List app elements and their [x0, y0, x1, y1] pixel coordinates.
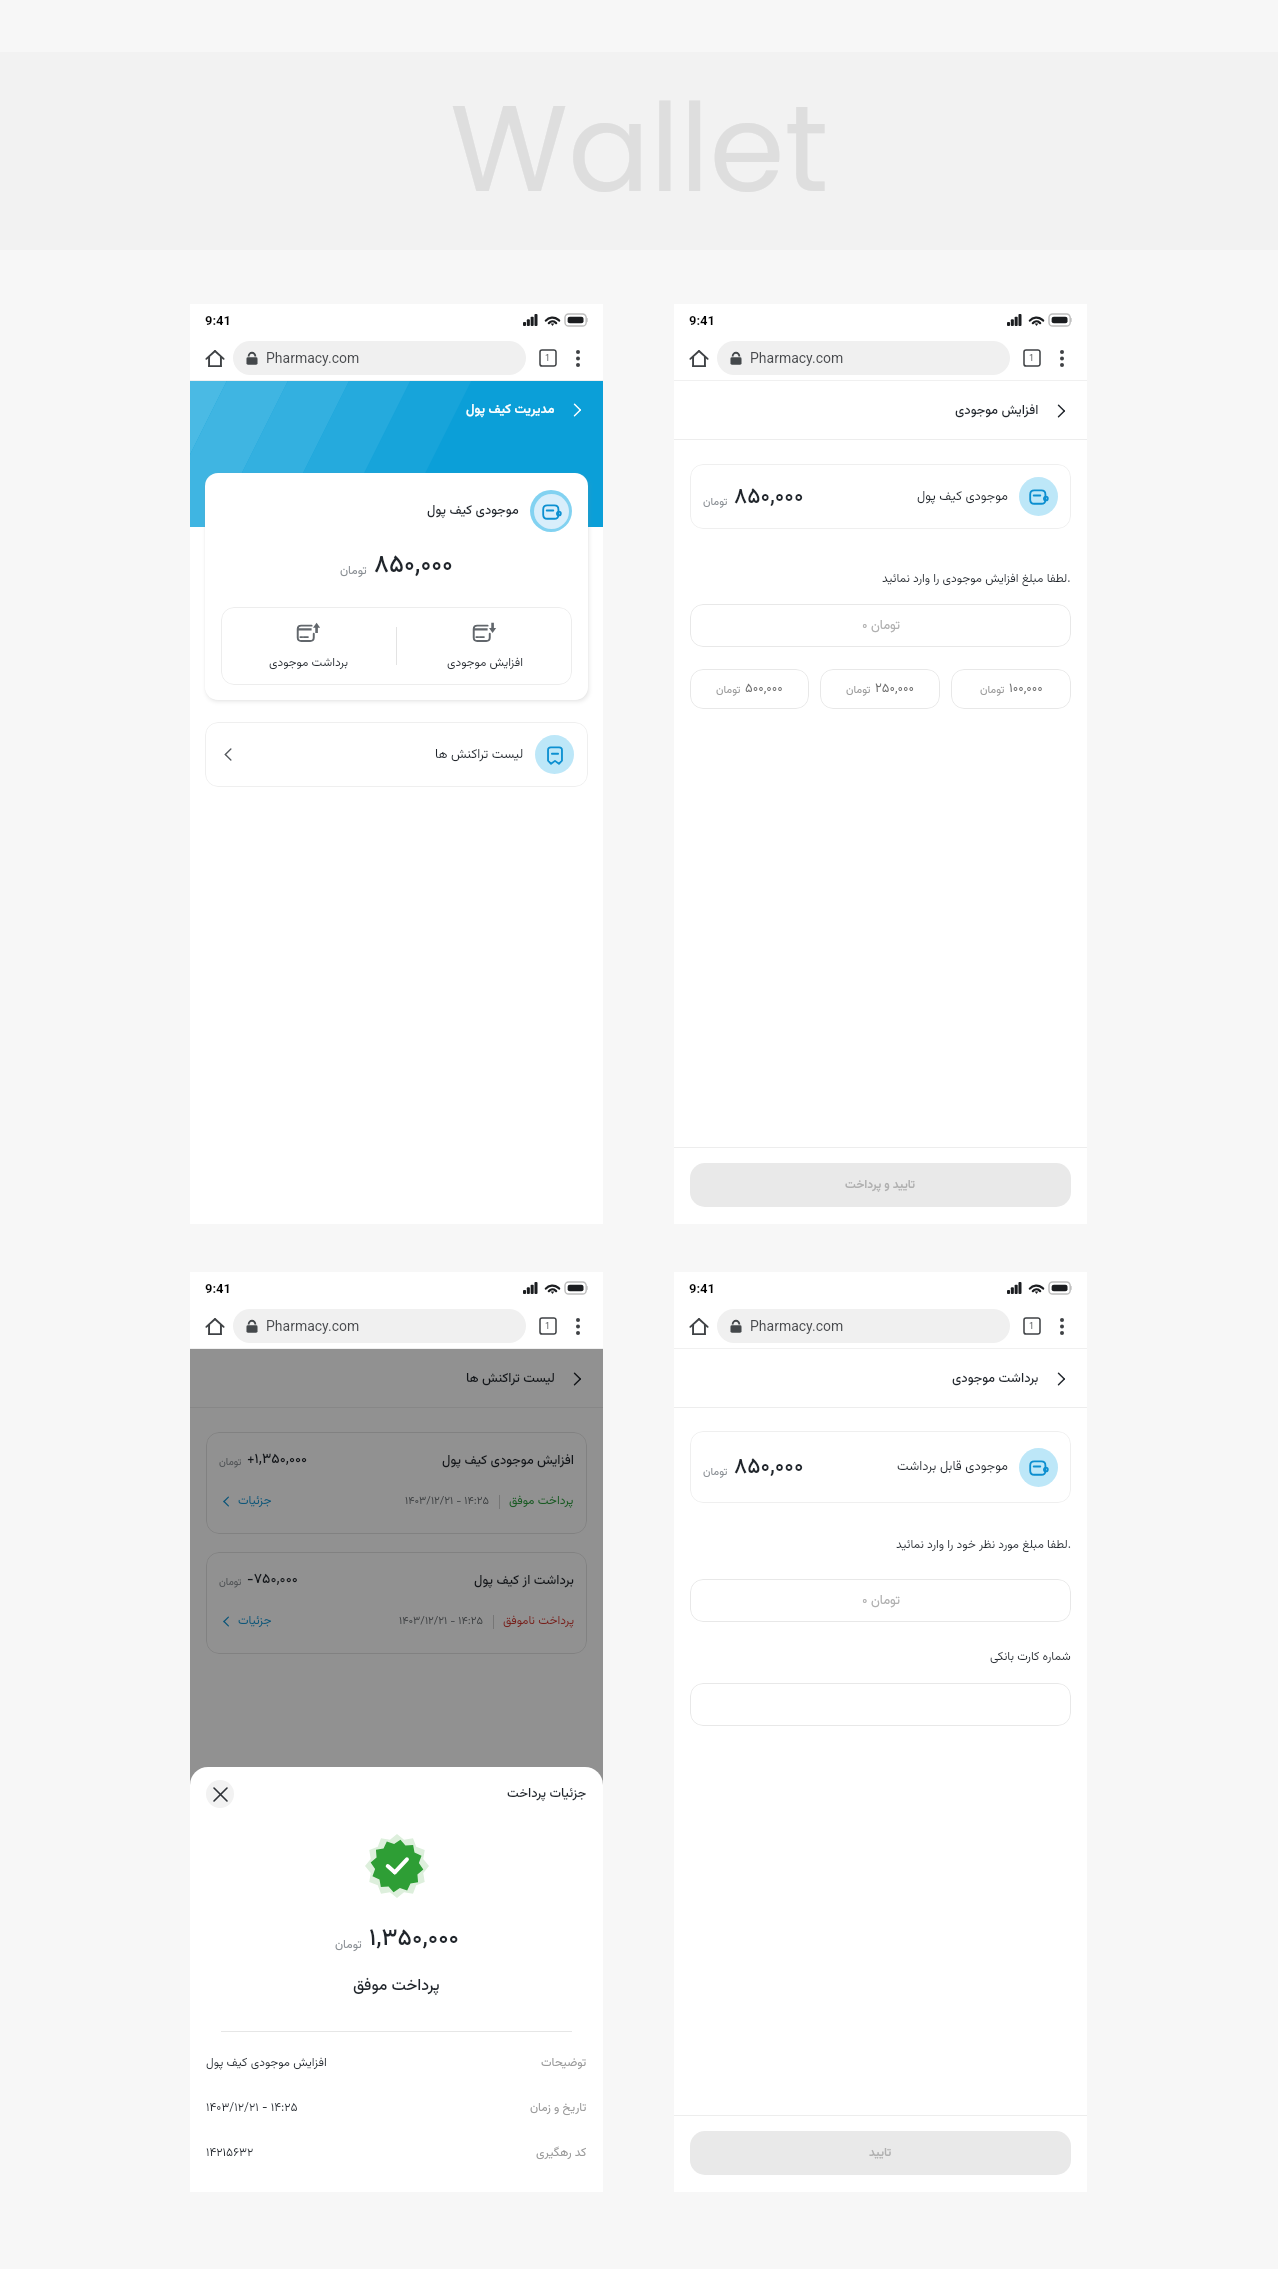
staticText: پرداخت موفق	[353, 1974, 440, 1999]
button[interactable]: تایید و پرداخت	[690, 1163, 1071, 1207]
staticText: لطفا مبلغ مورد نظر خود را وارد نمائید.	[896, 1536, 1071, 1555]
staticText: افزایش موجودی کیف پول	[442, 1451, 574, 1471]
button[interactable]: Home	[202, 345, 228, 371]
staticText: تایید	[869, 2144, 892, 2163]
staticText: تومان	[980, 682, 1005, 699]
button[interactable]: Back	[1051, 401, 1071, 421]
staticText: ۸۵۰,۰۰۰	[374, 546, 453, 585]
staticText: تومان	[335, 1936, 362, 1955]
button[interactable]: Tabs	[535, 1313, 561, 1339]
button[interactable]: ۰ تومان	[690, 1579, 1071, 1622]
button[interactable]: تومان	[690, 1431, 1071, 1503]
button[interactable]: Back	[567, 1369, 587, 1389]
staticText: ۰ تومان	[862, 616, 900, 636]
staticText: تومان	[340, 562, 367, 581]
button[interactable]: More options	[1049, 345, 1075, 371]
button[interactable]: افزایش موجودی	[397, 607, 572, 685]
staticText: +۱,۳۵۰,۰۰۰	[247, 1449, 308, 1471]
button[interactable]: تومان	[690, 669, 809, 709]
staticText: شماره کارت بانکی	[990, 1648, 1071, 1667]
button[interactable]: تومان	[951, 669, 1071, 709]
staticText: ۸۵۰,۰۰۰	[734, 1450, 804, 1484]
button[interactable]: جزئیات	[219, 1492, 272, 1511]
button[interactable]: Home	[686, 1313, 712, 1339]
staticText: Pharmacy.com	[750, 1318, 844, 1334]
staticText: Pharmacy.com	[750, 350, 844, 366]
staticText: افزایش موجودی	[955, 401, 1039, 421]
button[interactable]: Back	[1051, 1369, 1071, 1389]
staticText: ۱,۳۵۰,۰۰۰	[369, 1920, 459, 1958]
staticText: 1	[545, 353, 551, 364]
button[interactable]: Pharmacy.com	[717, 1309, 1010, 1343]
staticText: کد رهگیری	[536, 2144, 587, 2163]
button[interactable]: Close	[206, 1780, 234, 1808]
staticText: توضیحات	[541, 2054, 587, 2073]
button[interactable]: Home	[202, 1313, 228, 1339]
staticText: 9:41	[689, 313, 716, 328]
staticText: لیست تراکنش ها	[435, 745, 524, 765]
staticText: تومان	[846, 682, 871, 699]
staticText: برداشت موجودی	[269, 654, 348, 673]
staticText: موجودی کیف پول	[427, 501, 519, 521]
staticText: برداشت موجودی	[952, 1369, 1039, 1389]
staticText: 1	[1029, 353, 1035, 364]
button[interactable]: برداشت موجودی	[221, 607, 396, 685]
button[interactable]: Pharmacy.com	[233, 1309, 526, 1343]
staticText: لطفا مبلغ افزایش موجودی را وارد نمائید.	[882, 570, 1071, 589]
button[interactable]: Pharmacy.com	[717, 341, 1010, 375]
staticText: پرداخت ناموفق	[503, 1612, 574, 1631]
staticText: تومان	[703, 494, 728, 511]
staticText: ۱۴۰۳/۱۲/۲۱ - ۱۴:۲۵	[206, 2099, 298, 2118]
button[interactable]: ۰ تومان	[690, 604, 1071, 647]
staticText: پرداخت موفق	[509, 1492, 574, 1511]
staticText: Wallet	[450, 64, 829, 233]
staticText: Pharmacy.com	[266, 350, 360, 366]
staticText: موجودی قابل برداشت	[897, 1457, 1008, 1477]
button[interactable]: Tabs	[1019, 1313, 1045, 1339]
button[interactable]: More options	[565, 345, 591, 371]
staticText: 1	[545, 1321, 551, 1332]
staticText: ۱۴۲۱۵۶۳۲	[206, 2144, 254, 2163]
staticText: لیست تراکنش ها	[466, 1369, 555, 1389]
staticText: ۲۵۰,۰۰۰	[875, 679, 914, 699]
staticText: 9:41	[205, 313, 232, 328]
button[interactable]: More options	[565, 1313, 591, 1339]
staticText: ۱۰۰,۰۰۰	[1009, 679, 1043, 699]
staticText: مدیریت کیف پول	[466, 400, 555, 420]
staticText: جزئیات	[238, 1612, 272, 1631]
button[interactable]: Back	[567, 400, 587, 420]
staticText: تومان	[219, 1455, 242, 1471]
button[interactable]: More options	[1049, 1313, 1075, 1339]
button[interactable]: تومان	[690, 464, 1071, 529]
staticText: ۱۴۰۳/۱۲/۲۱ - ۱۴:۲۵	[405, 1493, 490, 1510]
staticText: 1	[1029, 1321, 1035, 1332]
button[interactable]: تومان	[820, 669, 940, 709]
staticText: ۰ تومان	[862, 1591, 900, 1611]
staticText: 9:41	[689, 1281, 716, 1296]
button[interactable]	[690, 1683, 1071, 1726]
staticText: موجودی کیف پول	[917, 487, 1008, 507]
staticText: ۱۴۰۳/۱۲/۲۱ - ۱۴:۲۵	[399, 1613, 484, 1630]
staticText: افزایش موجودی	[447, 654, 523, 673]
staticText: تومان	[703, 1464, 728, 1481]
button[interactable]: Tabs	[535, 345, 561, 371]
staticText: افزایش موجودی کیف پول	[206, 2054, 327, 2073]
button[interactable]: تومان	[206, 1432, 587, 1534]
staticText: ۸۵۰,۰۰۰	[734, 480, 804, 514]
staticText: تومان	[219, 1575, 242, 1591]
staticText: Pharmacy.com	[266, 1318, 360, 1334]
staticText: جزئیات پرداخت	[507, 1784, 587, 1804]
button[interactable]: Tabs	[1019, 345, 1045, 371]
staticText: تاریخ و زمان	[530, 2099, 587, 2118]
button[interactable]: Home	[686, 345, 712, 371]
staticText: 9:41	[205, 1281, 232, 1296]
staticText: تومان	[716, 682, 741, 699]
button[interactable]: تایید	[690, 2131, 1071, 2175]
staticText: تایید و پرداخت	[845, 1176, 916, 1195]
button[interactable]: Pharmacy.com	[233, 341, 526, 375]
staticText: ۵۰۰,۰۰۰	[745, 679, 783, 699]
staticText: -۷۵۰,۰۰۰	[247, 1569, 298, 1591]
button[interactable]: جزئیات	[219, 1612, 272, 1631]
button[interactable]: لیست تراکنش ها	[205, 722, 588, 787]
button[interactable]: تومان	[206, 1552, 587, 1654]
